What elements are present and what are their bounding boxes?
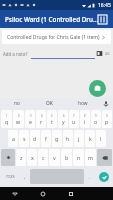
- button[interactable]: g: [52, 130, 62, 147]
- staticText: g: [55, 135, 59, 142]
- button[interactable]: k: [85, 130, 95, 147]
- button[interactable]: a: [8, 130, 18, 147]
- staticText: y: [62, 118, 65, 125]
- staticText: z: [20, 154, 23, 161]
- staticText: w: [16, 118, 21, 125]
- staticText: ?123: [6, 174, 15, 179]
- staticText: u: [72, 118, 76, 125]
- staticText: ,: [24, 174, 26, 180]
- button[interactable]: x: [27, 149, 37, 166]
- button[interactable]: j: [74, 130, 84, 147]
- staticText: 8: [84, 114, 86, 118]
- button[interactable]: Enter: [95, 167, 112, 186]
- button[interactable]: b: [61, 149, 72, 166]
- button[interactable]: Home: [29, 187, 57, 200]
- staticText: d: [33, 135, 37, 142]
- staticText: c: [42, 154, 45, 161]
- staticText: j: [78, 135, 80, 142]
- staticText: 9: [95, 114, 97, 118]
- button[interactable]: 6: [58, 110, 68, 128]
- button[interactable]: n: [73, 149, 84, 166]
- button[interactable]: z: [16, 149, 26, 166]
- staticText: q: [5, 118, 9, 125]
- button[interactable]: Backspace: [97, 149, 112, 166]
- button[interactable]: .: [85, 167, 94, 186]
- staticText: 3: [30, 114, 32, 118]
- staticText: 7: [73, 114, 75, 118]
- staticText: r: [40, 118, 43, 125]
- button[interactable]: how: [66, 98, 99, 109]
- staticText: 1: [6, 114, 8, 118]
- button[interactable]: 3: [25, 110, 35, 128]
- staticText: how: [78, 100, 88, 107]
- button[interactable]: Add: [89, 80, 106, 97]
- staticText: 6: [63, 114, 65, 118]
- button[interactable]: 2: [13, 110, 24, 128]
- staticText: 16:45: [98, 2, 111, 9]
- button[interactable]: Sticker: [96, 50, 103, 57]
- button[interactable]: 7: [69, 110, 79, 128]
- staticText: Add a note?: [3, 51, 28, 57]
- staticText: Controlled Drugs for Chris Gale (1 item): [7, 34, 101, 41]
- staticText: 5: [51, 114, 53, 118]
- button[interactable]: 5: [47, 110, 57, 128]
- button[interactable]: 4: [36, 110, 46, 128]
- button[interactable]: 1: [1, 110, 12, 128]
- staticText: .: [89, 174, 91, 180]
- button[interactable]: 0: [102, 110, 112, 128]
- button[interactable]: ,: [20, 167, 29, 186]
- staticText: 2: [18, 114, 20, 118]
- staticText: s: [23, 135, 26, 142]
- button[interactable]: h: [63, 130, 73, 147]
- staticText: h: [66, 135, 70, 142]
- button[interactable]: OK: [33, 98, 66, 109]
- button[interactable]: s: [19, 130, 29, 147]
- staticText: x: [31, 154, 34, 161]
- staticText: v: [53, 154, 56, 161]
- button[interactable]: Keypad: [95, 12, 109, 26]
- staticText: AB: [105, 51, 110, 56]
- staticText: k: [89, 135, 92, 142]
- staticText: t: [51, 118, 53, 125]
- button[interactable]: Shift: [1, 149, 15, 166]
- staticText: OK: [46, 100, 53, 107]
- button[interactable]: l: [96, 130, 106, 147]
- staticText: b: [65, 154, 69, 161]
- staticText: f: [45, 135, 47, 142]
- button[interactable]: [31, 48, 95, 59]
- staticText: 4: [41, 114, 43, 118]
- staticText: a: [12, 135, 15, 142]
- staticText: Psiloc Ward (1 Controlled Dru…: [5, 15, 99, 24]
- staticText: no: [14, 100, 20, 107]
- button[interactable]: 9: [91, 110, 101, 128]
- staticText: e: [29, 118, 32, 125]
- button[interactable]: 8: [80, 110, 90, 128]
- button[interactable]: v: [49, 149, 60, 166]
- staticText: 0: [106, 114, 108, 118]
- button[interactable]: Recent apps: [57, 187, 85, 200]
- button[interactable]: d: [30, 130, 40, 147]
- button[interactable]: c: [38, 149, 48, 166]
- button[interactable]: Controlled Drugs for Chris Gale (1 item): [2, 30, 111, 44]
- button[interactable]: no: [0, 98, 33, 109]
- button[interactable]: ?123: [1, 167, 19, 186]
- staticText: l: [100, 135, 102, 142]
- staticText: m: [88, 154, 93, 161]
- staticText: o: [94, 118, 98, 125]
- button[interactable]: Voice input: [99, 98, 113, 109]
- staticText: n: [77, 154, 81, 161]
- staticText: i: [84, 118, 86, 125]
- button[interactable]: Back: [0, 187, 29, 200]
- button[interactable]: f: [41, 130, 51, 147]
- staticText: p: [105, 118, 109, 125]
- button[interactable]: m: [85, 149, 96, 166]
